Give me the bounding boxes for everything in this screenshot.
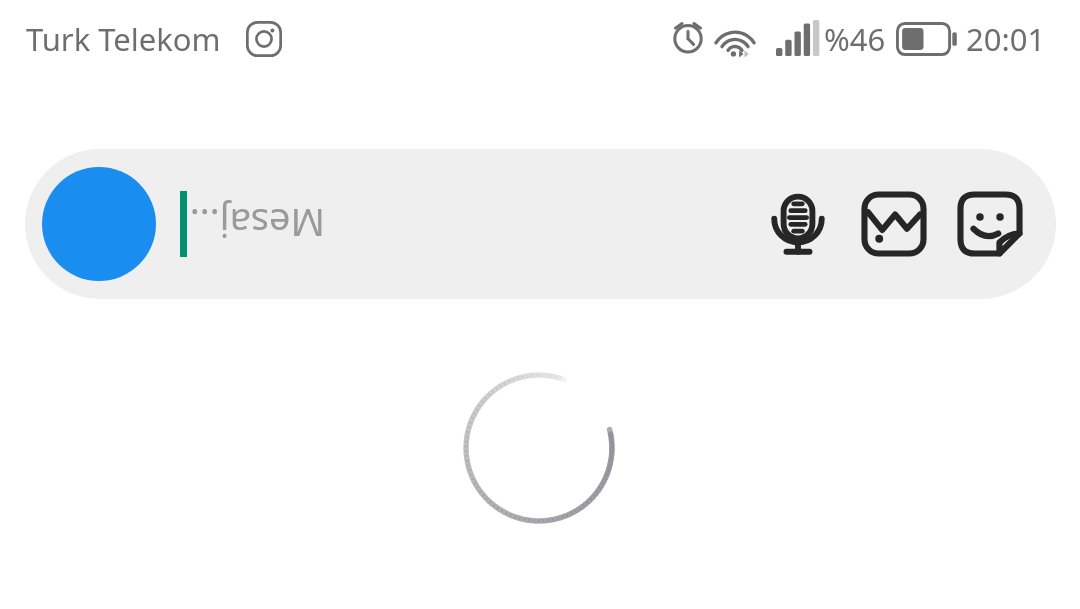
button[interactable]: Profile photo — [42, 167, 156, 281]
staticText: %46 — [824, 18, 886, 60]
button[interactable]: Gallery — [846, 176, 942, 272]
button[interactable]: Voice message — [750, 176, 846, 272]
button[interactable]: Stickers — [942, 176, 1038, 272]
staticText: Turk Telekom — [26, 18, 221, 60]
button[interactable]: Profile photo — [25, 149, 1056, 299]
staticText: 20:01 — [966, 18, 1046, 60]
button[interactable]: Mesaj… — [180, 149, 750, 299]
staticText: Mesaj… — [189, 198, 325, 250]
